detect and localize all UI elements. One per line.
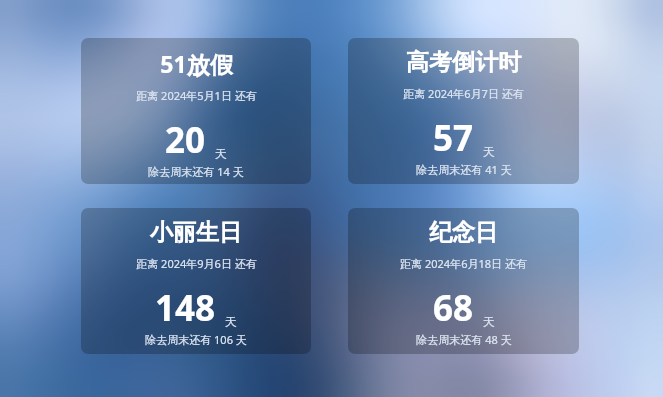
staticText: 小丽生日 (150, 218, 242, 247)
staticText: 距离 2024年5月1日 还有 (136, 88, 257, 103)
button[interactable]: 51放假 (81, 38, 311, 184)
staticText: 除去周末还有 14 天 (148, 164, 244, 179)
button[interactable]: 高考倒计时 (348, 38, 579, 184)
staticText: 距离 2024年6月18日 还有 (400, 256, 527, 271)
staticText: 68 (433, 284, 474, 332)
button[interactable]: 纪念日 (348, 208, 579, 354)
staticText: 51放假 (160, 48, 233, 79)
staticText: 148 (155, 284, 216, 332)
staticText: 纪念日 (429, 218, 498, 247)
staticText: 高考倒计时 (406, 48, 521, 77)
staticText: 距离 2024年6月7日 还有 (403, 86, 524, 101)
button[interactable]: 小丽生日 (81, 208, 311, 354)
staticText: 天 (215, 146, 227, 161)
staticText: 天 (225, 314, 237, 329)
staticText: 天 (483, 314, 495, 329)
staticText: 除去周末还有 106 天 (145, 332, 247, 347)
staticText: 除去周末还有 41 天 (416, 162, 512, 177)
staticText: 距离 2024年9月6日 还有 (136, 256, 257, 271)
staticText: 除去周末还有 48 天 (416, 332, 512, 347)
staticText: 20 (165, 116, 206, 164)
staticText: 天 (483, 144, 495, 159)
staticText: 57 (433, 114, 474, 162)
